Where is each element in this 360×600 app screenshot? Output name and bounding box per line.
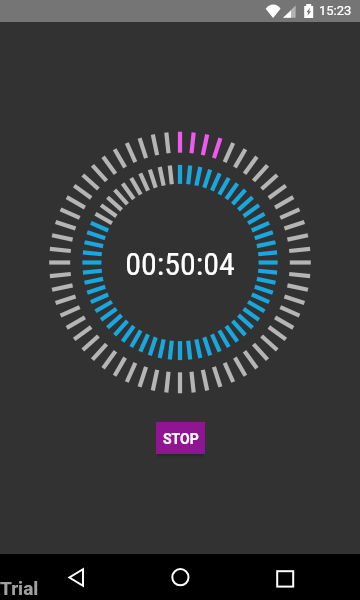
button[interactable]: Recent apps: [265, 557, 305, 597]
staticText: STOP: [163, 431, 199, 447]
staticText: 00:50:04: [0, 245, 360, 283]
button[interactable]: Home: [160, 557, 200, 597]
staticText: Trial: [0, 577, 39, 599]
button[interactable]: Back: [56, 557, 96, 597]
button[interactable]: STOP: [156, 422, 205, 454]
staticText: 15:23: [319, 3, 352, 18]
